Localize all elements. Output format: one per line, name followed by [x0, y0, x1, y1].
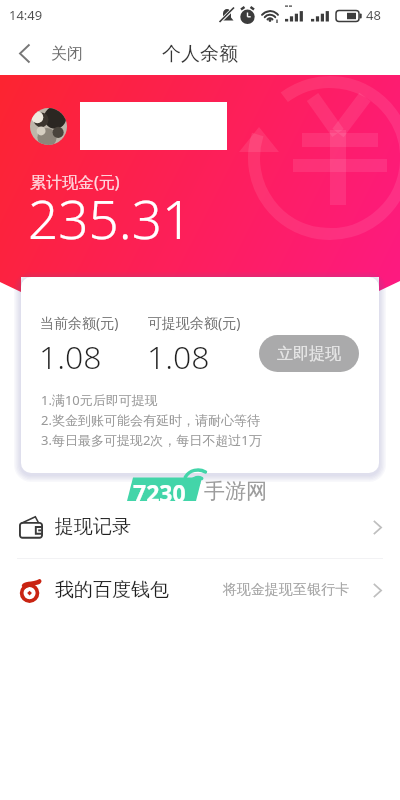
staticText: 1.08	[147, 335, 210, 379]
staticText: 手游网	[204, 478, 267, 504]
other: 我的百度钱包	[19, 578, 43, 602]
staticText: 累计现金(元)	[30, 171, 120, 193]
staticText: 14:49	[9, 6, 43, 24]
button[interactable]: 立即提现	[259, 335, 359, 372]
staticText: 48	[366, 6, 381, 24]
staticText: 2.奖金到账可能会有延时，请耐心等待	[41, 411, 260, 429]
staticText: 可提现余额(元)	[148, 313, 241, 332]
staticText: 7230	[133, 477, 186, 508]
button[interactable]: 提现记录	[0, 496, 400, 558]
staticText: 235.31	[28, 182, 193, 254]
button[interactable]: 关闭	[0, 32, 97, 75]
staticText: 3.每日最多可提现2次，每日不超过1万	[41, 431, 262, 449]
button[interactable]: 我的百度钱包	[0, 559, 400, 621]
staticText: 提现记录	[55, 515, 131, 539]
staticText: 将现金提现至银行卡	[223, 581, 349, 599]
staticText: 个人余额	[162, 42, 238, 66]
staticText: 立即提现	[277, 344, 341, 364]
staticText: 1.08	[39, 335, 102, 379]
other: 提现记录	[19, 515, 43, 539]
staticText: 我的百度钱包	[55, 578, 169, 602]
staticText: 当前余额(元)	[40, 313, 119, 332]
staticText: 关闭	[51, 44, 83, 64]
staticText: 1.满10元后即可提现	[41, 391, 158, 409]
